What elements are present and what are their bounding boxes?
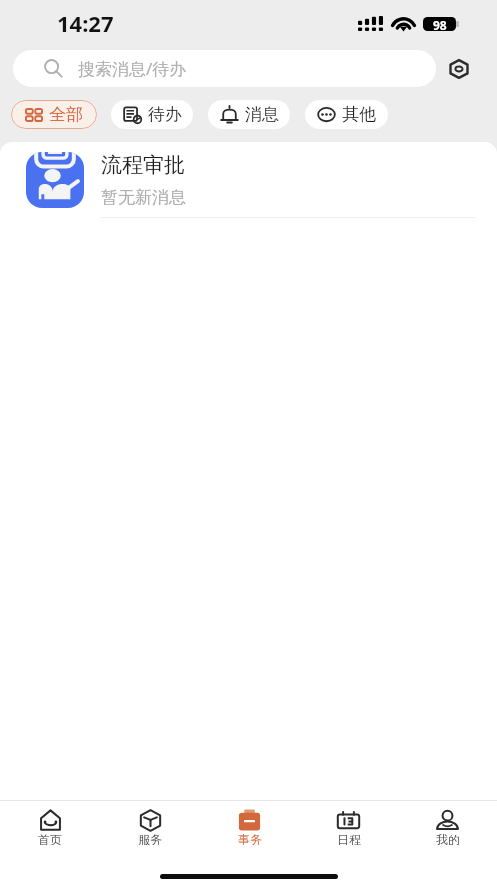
staticText: 日程 [337, 832, 361, 845]
staticText: 事务 [238, 832, 262, 845]
staticText: 全部 [49, 104, 83, 125]
staticText: 首页 [38, 832, 62, 845]
button[interactable]: 其他 [305, 100, 388, 129]
staticText: 暂无新消息 [101, 187, 186, 208]
button[interactable]: 待办 [111, 100, 193, 129]
button[interactable]: 首页 [0, 801, 100, 845]
button[interactable]: 事务 [200, 801, 299, 845]
staticText: 待办 [148, 104, 182, 125]
button[interactable]: 消息 [208, 100, 290, 129]
staticText: 搜索消息/待办 [78, 57, 187, 80]
staticText: 服务 [138, 832, 162, 845]
button[interactable]: Settings [443, 53, 475, 85]
staticText: 98 [433, 17, 447, 31]
button[interactable]: 搜索消息/待办 [13, 50, 436, 87]
staticText: 流程审批 [101, 152, 185, 178]
button[interactable]: 流程审批 [0, 142, 497, 218]
button[interactable]: 我的 [398, 801, 497, 845]
staticText: 我的 [436, 832, 460, 845]
staticText: 其他 [342, 104, 376, 125]
staticText: 14:27 [57, 8, 114, 38]
button[interactable]: 日程 [299, 801, 398, 845]
button[interactable]: 服务 [100, 801, 200, 845]
staticText: 消息 [245, 104, 279, 125]
button[interactable]: 全部 [11, 100, 97, 129]
